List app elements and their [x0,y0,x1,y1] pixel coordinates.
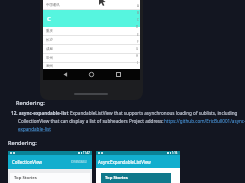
button[interactable]: Back [61,70,70,79]
staticText: EXPANDABLE [71,160,88,164]
button[interactable]: Home [87,70,96,79]
staticText: 重庆 [46,29,53,33]
staticText: 潮州 [46,64,53,68]
staticText: AsyncExpandableListView [98,159,151,165]
staticText: 12. async-expandable-list [11,110,70,116]
staticText: CollectionView [12,159,42,165]
staticText: Rendering: [16,99,45,107]
staticText: 中国通讯 [46,3,60,7]
staticText: 11:47 [83,151,90,155]
staticText: Top Stories [105,175,128,181]
staticText: A [137,4,139,8]
staticText: 常州 [46,56,53,60]
staticText: Rendering: [8,139,37,147]
button[interactable]: 成都 [43,45,140,53]
button[interactable]: expandable-list [18,126,51,132]
staticText: B [137,11,139,15]
staticText: C [47,15,51,23]
staticText: CollectionView that can display a list o… [18,118,164,124]
staticText: 长沙 [46,38,53,42]
staticText: 成都 [46,47,53,51]
button[interactable]: 长沙 [43,36,140,44]
staticText: D [136,25,139,29]
button[interactable]: 常州 [43,54,140,62]
staticText: G [136,47,139,51]
staticText: ExpandableListView that supports asynchr… [70,110,238,116]
staticText: F [137,40,139,44]
staticText: H [136,54,139,58]
button[interactable]: C [43,10,140,27]
staticText: E [137,33,139,37]
staticText: 1:16 [172,151,178,155]
button[interactable]: Recents [114,70,123,79]
button[interactable]: 潮州 [43,63,140,69]
button[interactable]: 重庆 [43,27,140,35]
staticText: C [137,18,139,22]
staticText: I [137,61,139,65]
button[interactable]: https://github.com/EricBull001/async- [164,118,245,124]
button[interactable]: 中国通讯 [43,0,140,9]
staticText: Top Stories [14,175,37,181]
